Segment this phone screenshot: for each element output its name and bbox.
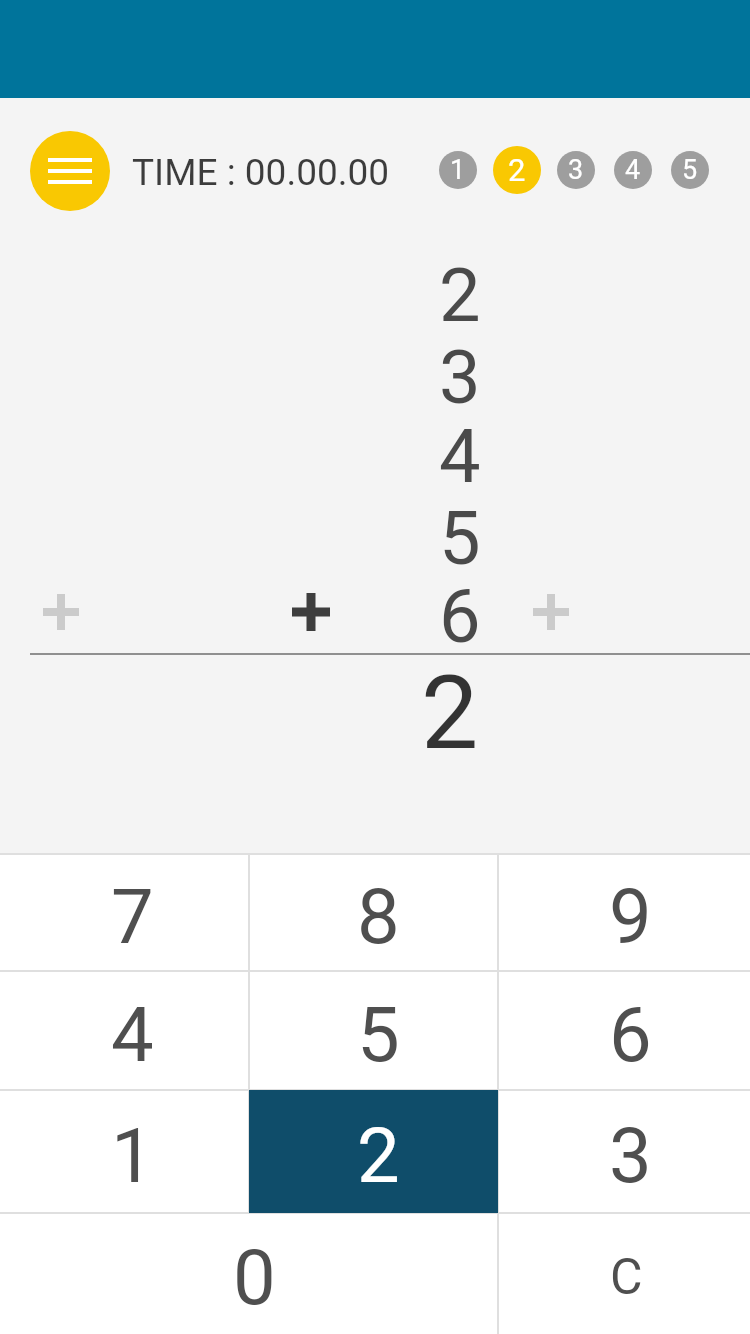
staticText: 2 bbox=[508, 152, 526, 188]
staticText: 5 bbox=[357, 990, 400, 1079]
button[interactable] bbox=[250, 972, 497, 1089]
button[interactable]: 1 bbox=[439, 151, 477, 189]
button[interactable] bbox=[0, 1214, 497, 1334]
button[interactable]: 4 bbox=[614, 151, 652, 189]
staticText: 0 bbox=[233, 1233, 276, 1322]
button[interactable] bbox=[499, 972, 750, 1089]
button[interactable]: 3 bbox=[557, 151, 595, 189]
staticText: 3 bbox=[609, 1111, 652, 1200]
staticText: TIME : 00.00.00 bbox=[132, 151, 390, 194]
staticText: C bbox=[610, 1248, 643, 1307]
button[interactable] bbox=[0, 972, 248, 1089]
staticText: 3 bbox=[439, 334, 481, 421]
staticText: 1 bbox=[111, 1111, 154, 1200]
button[interactable] bbox=[0, 855, 248, 970]
staticText: 4 bbox=[111, 990, 154, 1079]
button[interactable] bbox=[0, 1091, 248, 1212]
staticText: 4 bbox=[625, 154, 641, 186]
staticText: 1 bbox=[450, 154, 466, 186]
button[interactable] bbox=[30, 131, 110, 211]
staticText: 5 bbox=[682, 154, 698, 186]
staticText: 4 bbox=[439, 413, 481, 500]
staticText: 3 bbox=[568, 154, 584, 186]
staticText: 8 bbox=[357, 872, 400, 961]
button[interactable] bbox=[499, 855, 750, 970]
staticText: 2 bbox=[357, 1111, 400, 1200]
button[interactable]: 2 bbox=[493, 146, 541, 194]
staticText: 9 bbox=[609, 872, 652, 961]
staticText: 2 bbox=[421, 653, 479, 773]
staticText: 5 bbox=[439, 495, 481, 582]
staticText: 6 bbox=[609, 990, 652, 1079]
staticText: 2 bbox=[439, 252, 481, 339]
button[interactable] bbox=[499, 1214, 750, 1334]
button[interactable] bbox=[250, 855, 497, 970]
staticText: 7 bbox=[111, 872, 154, 961]
button[interactable] bbox=[249, 1090, 498, 1213]
button[interactable]: 5 bbox=[671, 151, 709, 189]
button[interactable] bbox=[499, 1091, 750, 1212]
staticText: 6 bbox=[439, 573, 481, 660]
